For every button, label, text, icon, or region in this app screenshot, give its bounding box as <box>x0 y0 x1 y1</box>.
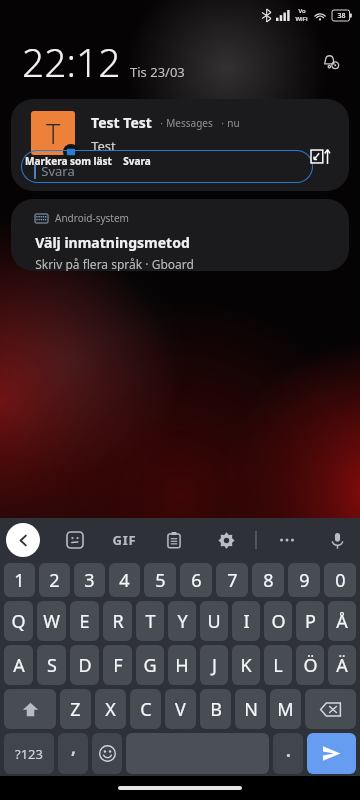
button[interactable]: P <box>296 601 324 641</box>
button[interactable]: Voice input <box>322 525 352 555</box>
button[interactable]: Settings <box>211 525 241 555</box>
button[interactable]: V <box>165 689 196 729</box>
button[interactable]: U <box>200 601 228 641</box>
button[interactable]: Emoji <box>92 733 122 774</box>
button[interactable]: F <box>103 645 132 685</box>
button[interactable]: Z <box>60 689 91 729</box>
button[interactable]: C <box>130 689 161 729</box>
button[interactable]: J <box>200 645 228 685</box>
button[interactable]: 2 <box>39 563 70 597</box>
staticText: U <box>207 609 221 634</box>
button[interactable]: Backspace <box>305 689 356 729</box>
button[interactable]: , <box>58 733 88 774</box>
button[interactable]: E <box>70 601 99 641</box>
button[interactable]: Ä <box>328 645 356 685</box>
staticText: Markera som läst <box>25 154 112 168</box>
staticText: 1 <box>14 568 25 593</box>
button[interactable]: Markera som läst <box>25 154 112 168</box>
button[interactable]: M <box>270 689 301 729</box>
staticText: · <box>213 116 227 130</box>
button[interactable]: GIF <box>112 531 137 549</box>
staticText: ?123 <box>15 745 43 763</box>
staticText: T <box>46 115 61 152</box>
staticText: Svara <box>41 162 75 180</box>
button[interactable]: N <box>235 689 266 729</box>
button[interactable]: W <box>37 601 66 641</box>
button[interactable]: 6 <box>180 563 212 597</box>
button[interactable]: ?123 <box>4 733 54 774</box>
button[interactable]: G <box>136 645 164 685</box>
button[interactable]: 8 <box>252 563 284 597</box>
staticText: J <box>212 653 217 678</box>
button[interactable]: B <box>200 689 231 729</box>
staticText: C <box>140 697 152 722</box>
staticText: Å <box>336 609 348 634</box>
staticText: T <box>145 609 156 634</box>
button[interactable]: Svara <box>21 150 313 183</box>
staticText: 4 <box>119 568 130 593</box>
staticText: P <box>305 609 316 634</box>
staticText: E <box>79 609 90 634</box>
button[interactable]: 5 <box>144 563 176 597</box>
staticText: 6 <box>191 568 202 593</box>
button[interactable]: T <box>136 601 164 641</box>
button[interactable]: . <box>273 733 303 774</box>
staticText: Tis 23/03 <box>130 63 185 81</box>
button[interactable]: Expand <box>303 139 337 173</box>
staticText: N <box>244 697 258 722</box>
button[interactable]: O <box>264 601 292 641</box>
button[interactable]: Android-system <box>11 199 349 271</box>
staticText: V <box>175 697 186 722</box>
staticText: WiFi <box>295 15 308 23</box>
staticText: R <box>112 609 124 634</box>
button[interactable]: 4 <box>109 563 140 597</box>
staticText: Messages <box>166 116 213 130</box>
staticText: F <box>113 653 123 678</box>
button[interactable]: L <box>264 645 292 685</box>
staticText: Svara <box>123 154 151 168</box>
staticText: Välj inmatningsmetod <box>35 233 190 252</box>
staticText: · <box>152 116 166 130</box>
button[interactable]: I <box>232 601 260 641</box>
button[interactable]: 1 <box>4 563 35 597</box>
staticText: B <box>210 697 222 722</box>
button[interactable]: 9 <box>288 563 320 597</box>
button[interactable]: Q <box>4 601 33 641</box>
button[interactable]: Y <box>168 601 196 641</box>
button[interactable]: Shift <box>4 689 56 729</box>
staticText: 3 <box>84 568 95 593</box>
staticText: Z <box>70 697 81 722</box>
button[interactable]: Notification settings <box>312 43 348 79</box>
button[interactable]: K <box>232 645 260 685</box>
button[interactable]: T <box>11 99 349 191</box>
button[interactable]: Stickers <box>60 525 90 555</box>
button[interactable]: Back <box>6 523 40 557</box>
button[interactable]: R <box>103 601 132 641</box>
staticText: X <box>105 697 116 722</box>
button[interactable]: Å <box>328 601 356 641</box>
button[interactable]: X <box>95 689 126 729</box>
button[interactable]: Send <box>307 733 356 774</box>
staticText: 0 <box>335 568 346 593</box>
staticText: 5 <box>155 568 166 593</box>
button[interactable]: H <box>168 645 196 685</box>
staticText: Q <box>11 609 26 634</box>
staticText: L <box>273 653 283 678</box>
staticText: nu <box>227 116 240 130</box>
button[interactable]: Clipboard <box>159 525 189 555</box>
staticText: D <box>78 653 92 678</box>
staticText: O <box>271 609 286 634</box>
button[interactable]: S <box>37 645 66 685</box>
staticText: . <box>286 739 291 762</box>
button[interactable]: A <box>4 645 33 685</box>
button[interactable]: 3 <box>74 563 105 597</box>
staticText: Android-system <box>55 211 129 225</box>
button[interactable]: Svara <box>123 154 151 168</box>
button[interactable]: D <box>70 645 99 685</box>
button[interactable]: 0 <box>324 563 356 597</box>
button[interactable]: More options <box>272 525 302 555</box>
button[interactable]: Ö <box>296 645 324 685</box>
button[interactable]: 7 <box>216 563 248 597</box>
staticText: 38 <box>337 11 346 21</box>
